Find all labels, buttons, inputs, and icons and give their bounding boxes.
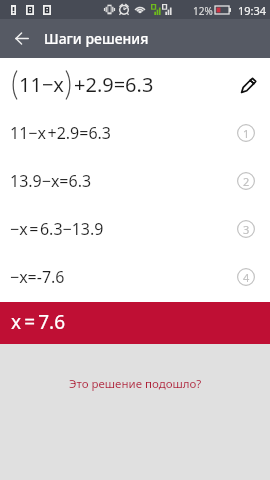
staticText: 11−x [19,71,64,98]
button[interactable]: −x=-7.6 [0,255,270,303]
staticText: 1 [243,126,250,141]
staticText: −x = 6.3−13.9 [10,218,104,240]
staticText: 19:34 [238,3,267,18]
button[interactable]: Back [0,19,40,58]
staticText: 11−x +2.9=6.3 [10,122,112,144]
button[interactable]: 11−x +2.9=6.3 [0,111,270,159]
staticText: 13.9−x=6.3 [10,170,92,192]
button[interactable]: Это решение подошло? [69,376,202,392]
staticText: −x=-7.6 [10,266,65,288]
staticText: x = 7.6 [11,309,66,335]
button[interactable]: 13.9−x=6.3 [0,159,270,207]
staticText: 4 [243,270,250,285]
button[interactable]: Edit equation [232,69,265,102]
button[interactable]: −x = 6.3−13.9 [0,207,270,255]
staticText: Шаги решения [44,29,149,48]
staticText: +2.9=6.3 [74,71,154,98]
staticText: 3 [243,222,250,237]
staticText: 2 [243,174,250,189]
staticText: 12% [193,4,213,18]
